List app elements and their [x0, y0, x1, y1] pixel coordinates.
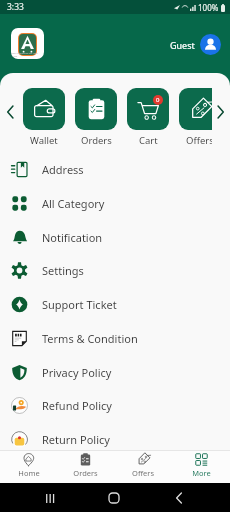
button[interactable]: Scroll right: [211, 103, 229, 121]
staticText: Settings: [42, 263, 84, 278]
button[interactable]: App logo: [11, 28, 44, 59]
button[interactable]: Return Policy: [0, 422, 230, 456]
button[interactable]: Orders: [57, 451, 114, 479]
button[interactable]: Support Ticket: [0, 287, 230, 321]
other: Profile: [200, 34, 221, 55]
button[interactable]: Wallet: [23, 88, 65, 147]
button[interactable]: More: [172, 451, 230, 479]
button[interactable]: Back: [171, 490, 187, 506]
staticText: Terms & Condition: [42, 331, 138, 346]
button[interactable]: Recents: [41, 490, 57, 506]
staticText: Offers: [186, 134, 212, 147]
staticText: Notification: [42, 230, 103, 245]
button[interactable]: Home: [106, 490, 122, 506]
staticText: Offers: [132, 468, 154, 478]
staticText: Home: [18, 468, 40, 478]
button[interactable]: Refund Policy: [0, 388, 230, 422]
staticText: Every Something For Your Home: [11, 52, 44, 58]
button[interactable]: Home: [0, 451, 57, 479]
button[interactable]: Scroll left: [1, 103, 19, 121]
button[interactable]: 0: [127, 88, 169, 147]
staticText: 100%: [198, 2, 219, 13]
staticText: Orders: [73, 468, 98, 478]
button[interactable]: Notification: [0, 220, 230, 254]
staticText: Cart: [139, 134, 158, 147]
staticText: 3:33: [7, 1, 24, 13]
button[interactable]: Settings: [0, 253, 230, 287]
button[interactable]: All Category: [0, 186, 230, 220]
button[interactable]: Terms & Condition: [0, 321, 230, 355]
staticText: Return Policy: [42, 432, 110, 447]
button[interactable]: Privacy Policy: [0, 355, 230, 389]
button[interactable]: Orders: [75, 88, 117, 147]
staticText: 0: [156, 96, 160, 104]
button[interactable]: Offers: [114, 451, 172, 479]
staticText: More: [192, 468, 211, 478]
button[interactable]: Guest: [170, 34, 221, 55]
staticText: Privacy Policy: [42, 365, 112, 380]
staticText: Guest: [170, 39, 195, 51]
staticText: Refund Policy: [42, 398, 112, 413]
staticText: Support Ticket: [42, 297, 117, 312]
staticText: All Category: [42, 196, 105, 211]
staticText: Orders: [81, 134, 112, 147]
staticText: Address: [42, 162, 84, 177]
staticText: Wallet: [30, 134, 58, 147]
button[interactable]: Offers: [179, 88, 212, 147]
button[interactable]: Address: [0, 152, 230, 186]
